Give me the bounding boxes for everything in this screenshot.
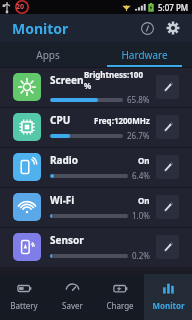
staticText: On xyxy=(138,195,150,206)
button[interactable]: Settings for CPU xyxy=(156,115,179,139)
button[interactable]: Hardware xyxy=(96,42,192,67)
button[interactable]: Settings xyxy=(160,15,186,41)
staticText: Freq:1200MHz xyxy=(94,115,150,126)
staticText: 5:07 PM xyxy=(158,2,189,13)
staticText: Apps xyxy=(36,48,60,62)
button[interactable]: Charge xyxy=(96,274,144,320)
button[interactable]: Monitor xyxy=(144,274,192,320)
staticText: Monitor xyxy=(12,19,69,38)
staticText: On xyxy=(138,155,150,166)
staticText: Hardware xyxy=(121,48,168,62)
button[interactable]: Settings for Sensor xyxy=(156,235,179,259)
button[interactable]: Battery xyxy=(0,274,48,320)
button[interactable]: CPU xyxy=(0,107,192,147)
staticText: Wi-Fi xyxy=(50,193,75,207)
button[interactable]: Settings for Screen xyxy=(156,75,179,99)
button[interactable]: Wi-Fi xyxy=(0,187,192,227)
button[interactable]: Settings for Radio xyxy=(156,155,179,179)
staticText: Screen xyxy=(50,73,84,87)
button[interactable]: Info xyxy=(134,15,160,41)
button[interactable]: Apps xyxy=(0,42,96,67)
staticText: 0.2% xyxy=(132,250,150,261)
staticText: Monitor xyxy=(152,300,185,311)
button[interactable]: Radio xyxy=(0,147,192,187)
staticText: CPU xyxy=(50,113,71,127)
staticText: 26.7% xyxy=(127,130,150,141)
staticText: Charge xyxy=(106,300,134,311)
button[interactable]: Settings for Wi-Fi xyxy=(156,195,179,219)
staticText: 1.0% xyxy=(132,210,150,221)
button[interactable]: Screen xyxy=(0,67,192,107)
staticText: Brightness:100% xyxy=(84,69,150,91)
button[interactable]: Sensor xyxy=(0,227,192,267)
staticText: Radio xyxy=(50,153,79,167)
staticText: 20 xyxy=(16,2,25,12)
staticText: 6.4% xyxy=(132,170,150,181)
staticText: Battery xyxy=(10,300,38,311)
button[interactable]: Saver xyxy=(48,274,96,320)
staticText: Saver xyxy=(62,300,83,311)
staticText: Sensor xyxy=(50,233,84,247)
staticText: 65.8% xyxy=(127,94,150,105)
